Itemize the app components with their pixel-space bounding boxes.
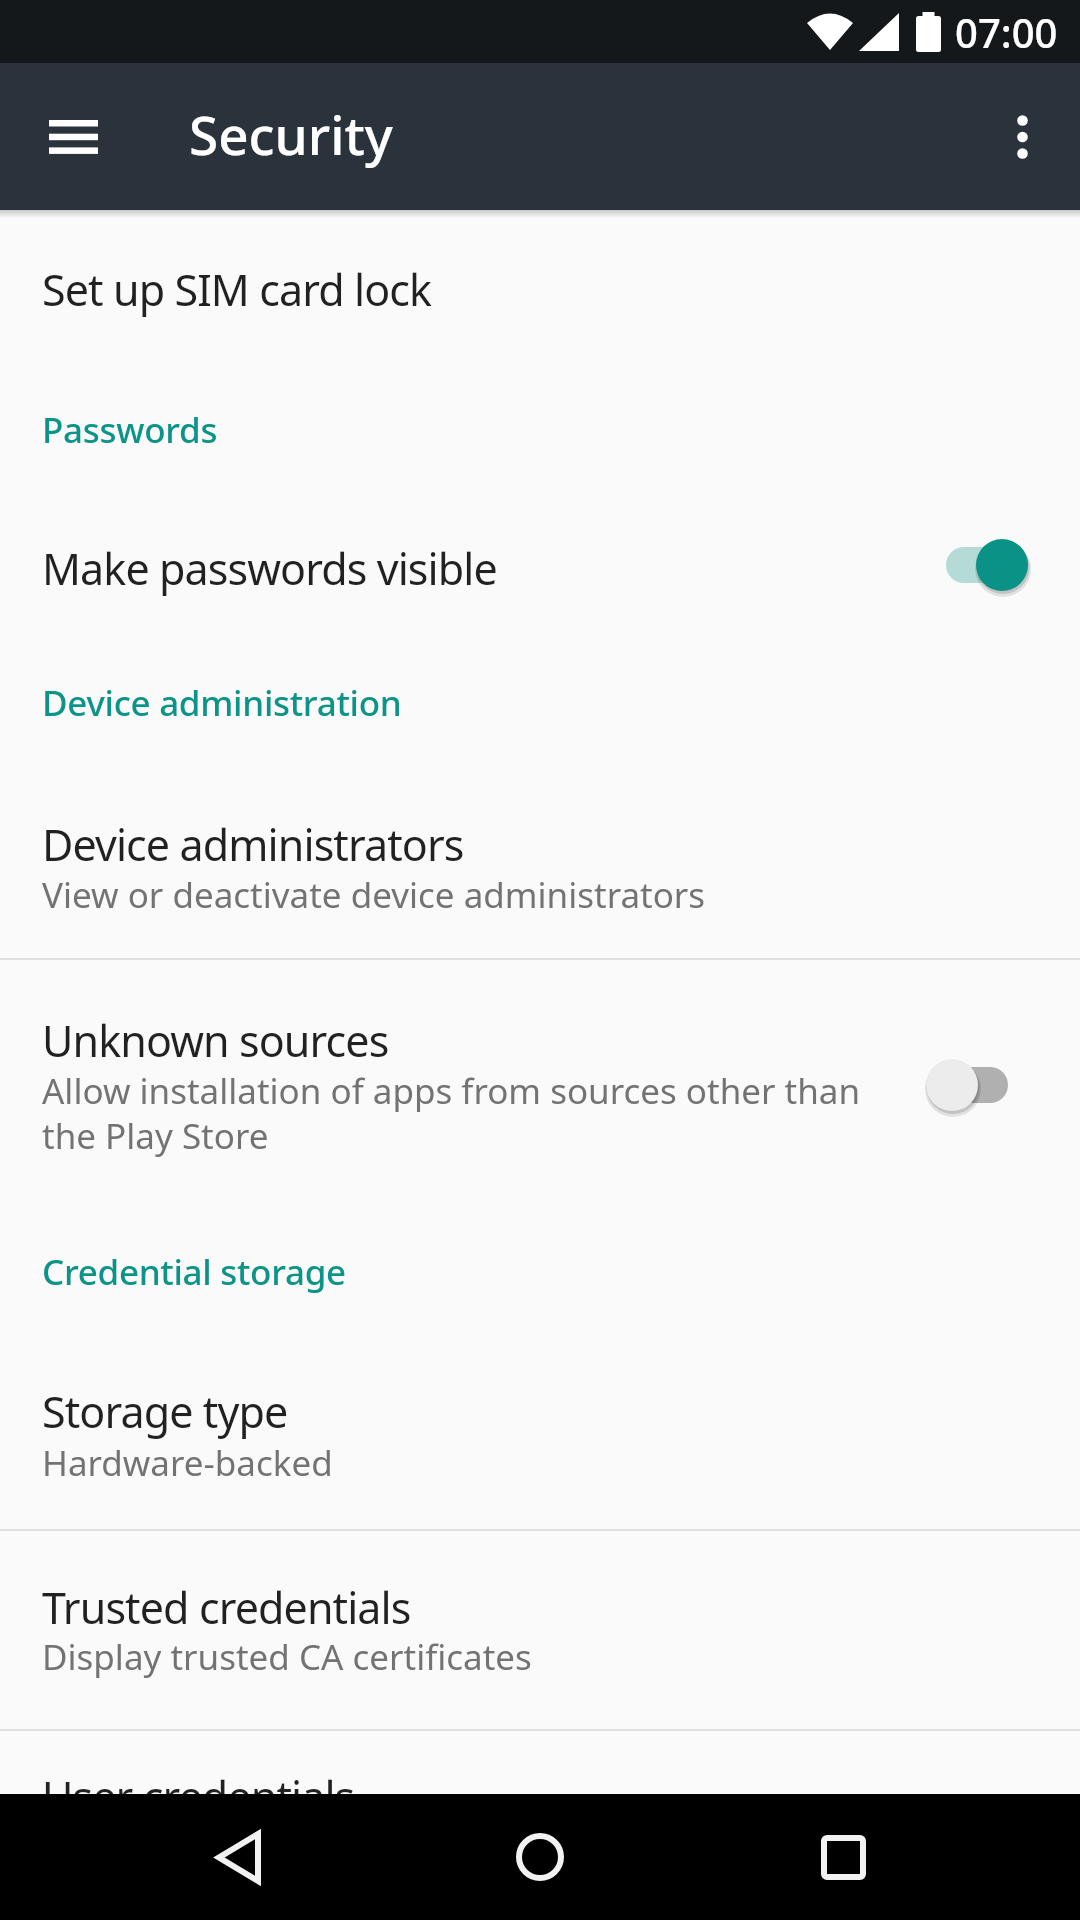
staticText: User credentials [42, 1767, 355, 1826]
button[interactable]: Set up SIM card lock [0, 231, 1080, 357]
staticText: Passwords [42, 406, 218, 454]
staticText: Storage type [42, 1382, 288, 1441]
staticText: Display trusted CA certificates [42, 1633, 532, 1681]
button[interactable] [780, 1794, 906, 1920]
staticText: View or deactivate device administrators [42, 871, 706, 919]
button[interactable]: Device administrators [0, 790, 1080, 958]
staticText: Device administrators [42, 815, 464, 874]
button[interactable] [477, 1794, 603, 1920]
button[interactable] [175, 1794, 301, 1920]
staticText: Trusted credentials [42, 1578, 411, 1637]
staticText: 07:00 [955, 5, 1058, 59]
button[interactable]: Unknown sources [0, 960, 1080, 1172]
staticText: Device administration [42, 679, 402, 727]
button[interactable]: Storage type [0, 1340, 1080, 1530]
button[interactable] [31, 94, 116, 179]
button[interactable] [980, 94, 1065, 179]
staticText: Credential storage [42, 1248, 346, 1296]
staticText: Unknown sources [42, 1011, 389, 1070]
staticText: Security [189, 98, 393, 170]
button[interactable]: Make passwords visible [0, 502, 1080, 628]
staticText: Set up SIM card lock [42, 260, 432, 319]
button[interactable]: User credentials [0, 1731, 1080, 1920]
staticText: Hardware-backed [42, 1439, 333, 1487]
button[interactable]: Trusted credentials [0, 1531, 1080, 1729]
staticText: Allow installation of apps from sources … [42, 1067, 861, 1159]
staticText: Make passwords visible [42, 539, 497, 598]
